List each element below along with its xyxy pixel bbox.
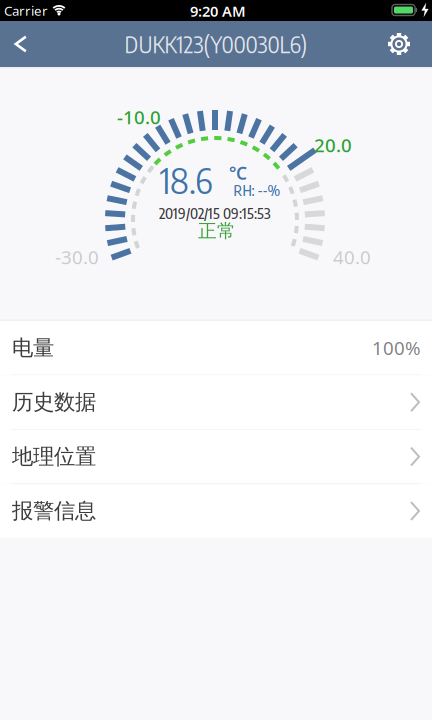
staticText: 电量: [12, 335, 54, 361]
staticText: DUKK123(Y00030L6): [124, 30, 307, 58]
staticText: Carrier: [4, 2, 48, 19]
staticText: 100%: [372, 335, 421, 360]
staticText: 历史数据: [12, 389, 96, 415]
button[interactable]: Settings: [377, 24, 421, 63]
staticText: 正常: [198, 219, 236, 242]
staticText: 地理位置: [12, 443, 96, 470]
staticText: 18.6: [160, 158, 212, 202]
button[interactable]: 地理位置: [0, 430, 432, 483]
staticText: RH: --%: [233, 181, 280, 199]
button[interactable]: 电量: [0, 321, 432, 375]
staticText: -30.0: [55, 245, 99, 269]
staticText: °C: [229, 161, 247, 184]
staticText: 9:20 AM: [190, 1, 246, 21]
staticText: 报警信息: [12, 498, 96, 524]
staticText: -10.0: [117, 105, 161, 129]
staticText: 40.0: [333, 245, 371, 269]
staticText: 2019/02/15 09:15:53: [159, 204, 271, 222]
button[interactable]: 历史数据: [0, 375, 432, 429]
staticText: 20.0: [314, 133, 352, 157]
button[interactable]: Back: [0, 24, 44, 63]
button[interactable]: 报警信息: [0, 484, 432, 538]
